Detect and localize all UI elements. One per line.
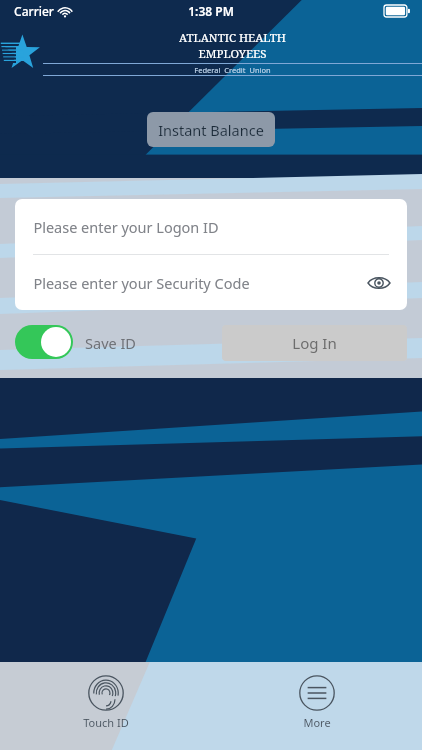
staticText: 1:38 PM xyxy=(188,3,234,19)
staticText: Save ID xyxy=(85,333,136,353)
staticText: ATLANTIC HEALTH xyxy=(179,30,286,46)
button[interactable]: Instant Balance xyxy=(147,112,275,147)
button[interactable]: More xyxy=(295,671,339,734)
button[interactable]: Please enter your Logon ID xyxy=(15,199,407,254)
button[interactable]: Log In xyxy=(222,325,407,361)
button[interactable]: Save ID toggle xyxy=(15,325,73,359)
staticText: EMPLOYEES xyxy=(198,46,267,62)
staticText: Touch ID xyxy=(83,715,129,730)
staticText: Carrier xyxy=(14,3,54,19)
staticText: Please enter your Security Code xyxy=(33,273,250,293)
staticText: Federal Credit Union xyxy=(194,65,271,75)
button[interactable]: Please enter your Security Code xyxy=(15,255,407,310)
staticText: Please enter your Logon ID xyxy=(33,217,219,237)
button[interactable]: Touch ID xyxy=(79,671,133,734)
staticText: More xyxy=(303,715,331,730)
staticText: Log In xyxy=(292,333,337,353)
staticText: Instant Balance xyxy=(158,120,264,140)
button[interactable]: Show security code xyxy=(365,269,393,297)
